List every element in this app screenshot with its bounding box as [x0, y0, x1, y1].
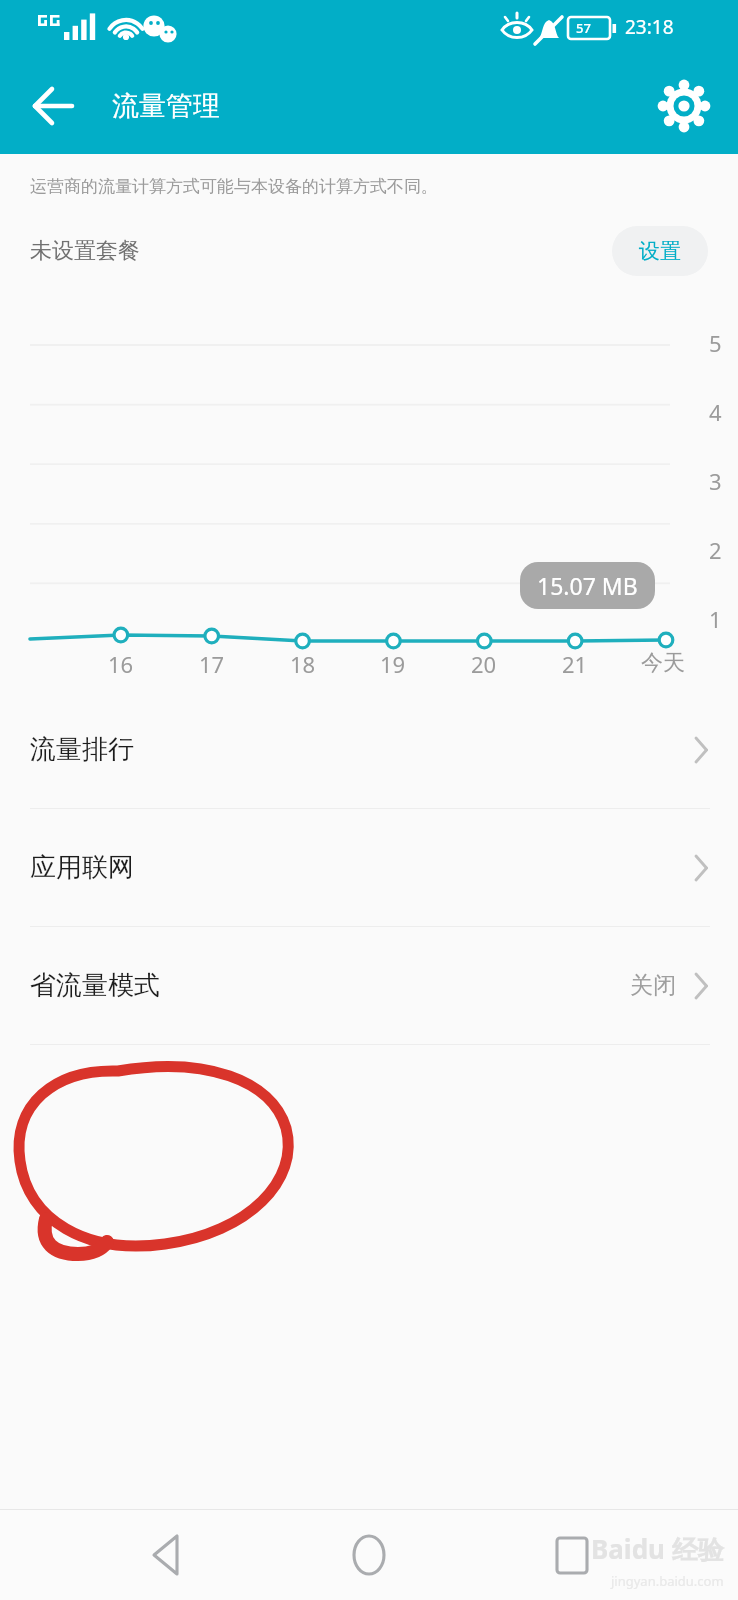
staticText: 应用联网 [30, 851, 134, 884]
button[interactable]: 流量排行 [0, 691, 738, 808]
staticText: 16 [108, 649, 134, 677]
staticText: 15.07 MB [537, 570, 638, 601]
staticText: 运营商的流量计算方式可能与本设备的计算方式不同。 [30, 176, 438, 197]
staticText: 57 [576, 19, 591, 37]
button[interactable]: Back [131, 1519, 203, 1591]
staticText: Baidu 经验 [591, 1531, 724, 1567]
staticText: 1 [709, 604, 722, 634]
staticText: 20 [471, 649, 497, 677]
staticText: 省流量模式 [30, 969, 160, 1002]
staticText: 未设置套餐 [30, 237, 140, 265]
staticText: 今天 [641, 649, 685, 677]
staticText: 关闭 [630, 971, 676, 1000]
staticText: 5 [709, 328, 722, 358]
button[interactable]: Recents [536, 1519, 608, 1591]
staticText: jingyan.baidu.com [611, 1572, 724, 1590]
button[interactable]: 省流量模式 [0, 927, 738, 1044]
button[interactable]: 应用联网 [0, 809, 738, 926]
button[interactable]: Back [20, 72, 88, 140]
staticText: 流量排行 [30, 733, 134, 766]
staticText: 2 [709, 535, 722, 565]
button[interactable]: 设置 [612, 226, 708, 276]
staticText: 19 [380, 649, 406, 677]
staticText: 4 [709, 397, 722, 427]
button[interactable]: Settings [652, 74, 716, 138]
staticText: 21 [562, 649, 588, 677]
staticText: 设置 [639, 238, 681, 264]
staticText: 流量管理 [112, 89, 220, 123]
staticText: 18 [290, 649, 316, 677]
staticText: 23:18 [625, 14, 674, 40]
staticText: 3 [709, 466, 722, 496]
button[interactable]: Home [333, 1519, 405, 1591]
staticText: 17 [199, 649, 225, 677]
